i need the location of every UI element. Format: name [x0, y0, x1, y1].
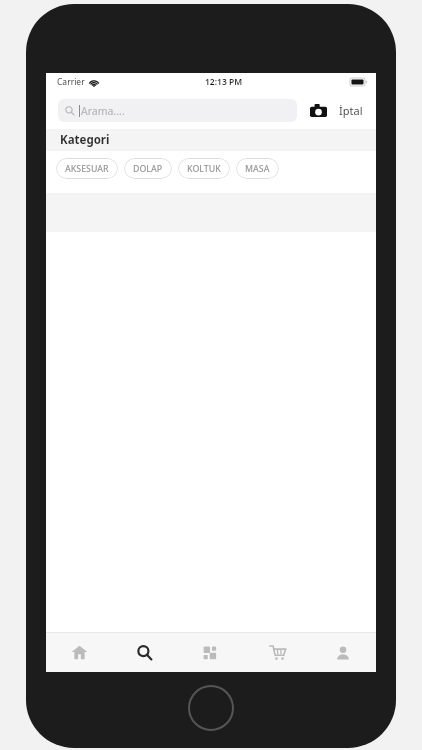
button[interactable]: DOLAP [124, 158, 172, 179]
staticText: Kategori [60, 132, 110, 148]
staticText: Arama.... [81, 104, 125, 118]
staticText: DOLAP [133, 163, 163, 175]
staticText: KOLTUK [187, 163, 221, 175]
button[interactable]: Camera search [306, 100, 330, 120]
staticText: 12:13 PM [205, 76, 243, 88]
button[interactable]: MASA [236, 158, 279, 179]
button[interactable]: Home button [187, 684, 235, 732]
button[interactable]: Search [112, 633, 178, 672]
button[interactable]: Cart [244, 633, 310, 672]
button[interactable]: İptal [337, 99, 365, 122]
button[interactable]: Categories [178, 633, 244, 672]
button[interactable]: KOLTUK [178, 158, 230, 179]
staticText: İptal [339, 103, 363, 118]
button[interactable]: AKSESUAR [56, 158, 118, 179]
staticText: AKSESUAR [65, 163, 109, 175]
staticText: MASA [245, 163, 270, 175]
button[interactable]: Home [46, 633, 112, 672]
staticText: Carrier [57, 76, 85, 88]
button[interactable]: Profile [310, 633, 376, 672]
button[interactable]: Arama.... [58, 99, 297, 122]
